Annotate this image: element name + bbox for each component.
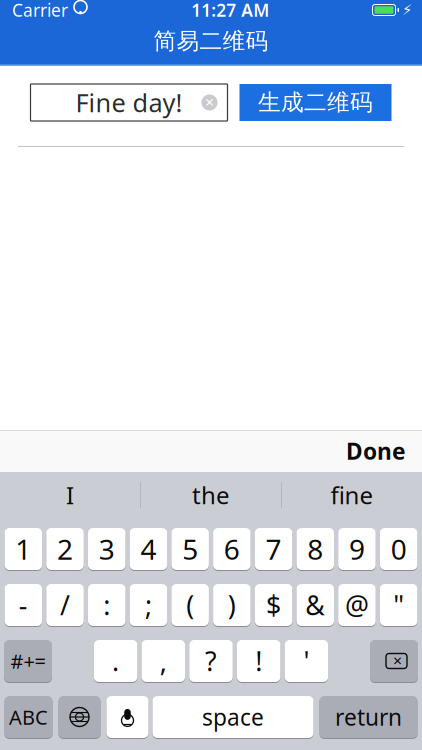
staticText: 5 xyxy=(182,530,198,568)
staticText: ' xyxy=(303,643,309,679)
button[interactable]: ? xyxy=(189,639,233,683)
staticText: ! xyxy=(255,643,262,679)
staticText: ⚡︎ xyxy=(402,2,412,18)
button[interactable]: Dictation xyxy=(106,695,148,739)
button[interactable]: Letters xyxy=(4,695,52,739)
button[interactable]: 1 xyxy=(5,527,42,571)
staticText: 生成二维码 xyxy=(258,89,373,116)
staticText: the xyxy=(192,479,230,511)
button[interactable]: 2 xyxy=(46,527,84,571)
button[interactable]: / xyxy=(46,583,84,627)
button[interactable]: - xyxy=(5,583,42,627)
button[interactable]: 9 xyxy=(338,527,376,571)
button[interactable]: . xyxy=(94,639,137,683)
staticText: fine xyxy=(330,479,373,511)
button[interactable]: ' xyxy=(285,639,328,683)
button[interactable]: 4 xyxy=(130,527,167,571)
button[interactable]: ( xyxy=(171,583,209,627)
staticText: $ xyxy=(266,587,281,623)
staticText: & xyxy=(305,587,325,623)
staticText: . xyxy=(112,643,119,679)
button[interactable]: Return xyxy=(319,695,417,739)
button[interactable]: space xyxy=(152,695,313,739)
staticText: space xyxy=(202,702,264,732)
staticText: 4 xyxy=(140,530,156,568)
button[interactable]: & xyxy=(296,583,334,627)
button[interactable]: I xyxy=(0,473,140,517)
staticText: I xyxy=(66,479,74,511)
button[interactable]: " xyxy=(380,583,417,627)
staticText: ABC xyxy=(9,704,48,730)
staticText: 9 xyxy=(349,530,365,568)
button[interactable]: @ xyxy=(338,583,376,627)
staticText: 3 xyxy=(99,530,115,568)
button[interactable]: : xyxy=(88,583,125,627)
staticText: - xyxy=(19,587,28,623)
staticText: 1 xyxy=(15,530,31,568)
staticText: ✕ xyxy=(204,96,214,109)
button[interactable]: Done xyxy=(346,436,422,466)
button[interactable]: 0 xyxy=(380,527,417,571)
button[interactable]: ; xyxy=(130,583,167,627)
staticText: 2 xyxy=(57,530,73,568)
staticText: return xyxy=(335,702,402,732)
staticText: ) xyxy=(228,587,236,623)
staticText: , xyxy=(160,643,167,679)
staticText: #+= xyxy=(10,648,45,674)
staticText: 0 xyxy=(391,530,407,568)
staticText: : xyxy=(103,587,110,623)
button[interactable]: 8 xyxy=(296,527,334,571)
staticText: / xyxy=(60,587,70,623)
staticText: ? xyxy=(205,643,217,679)
button[interactable]: Next keyboard xyxy=(58,695,100,739)
staticText: @ xyxy=(345,587,369,623)
button[interactable]: 3 xyxy=(88,527,125,571)
staticText: 11:27 AM xyxy=(191,0,269,21)
button[interactable]: 5 xyxy=(171,527,209,571)
staticText: ; xyxy=(145,587,152,623)
button[interactable]: ! xyxy=(237,639,280,683)
staticText: Carrier xyxy=(12,0,68,21)
staticText: ✕ xyxy=(392,654,402,668)
staticText: Fine day! xyxy=(75,86,182,119)
staticText: 7 xyxy=(265,530,281,568)
button[interactable]: 6 xyxy=(213,527,251,571)
staticText: 简易二维码 xyxy=(153,27,268,55)
button[interactable]: 生成二维码 xyxy=(239,84,391,121)
button[interactable]: 7 xyxy=(255,527,292,571)
staticText: Done xyxy=(346,436,406,466)
staticText: 8 xyxy=(307,530,323,568)
button[interactable]: More symbols xyxy=(4,639,52,683)
button[interactable]: fine xyxy=(282,473,422,517)
staticText: " xyxy=(393,587,404,623)
button[interactable]: , xyxy=(142,639,185,683)
staticText: 6 xyxy=(224,530,240,568)
button[interactable]: Delete xyxy=(370,639,418,683)
button[interactable]: $ xyxy=(255,583,292,627)
button[interactable]: ) xyxy=(213,583,251,627)
button[interactable]: the xyxy=(141,473,281,517)
staticText: ( xyxy=(186,587,194,623)
button[interactable]: Fine day! xyxy=(30,84,227,121)
